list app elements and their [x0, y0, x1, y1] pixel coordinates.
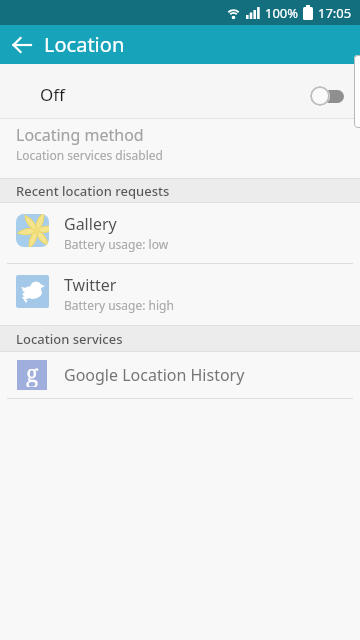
staticText: g: [26, 357, 39, 387]
staticText: Twitter: [64, 274, 117, 296]
staticText: Location: [44, 31, 125, 58]
button[interactable]: g: [0, 352, 360, 398]
staticText: Locating method: [16, 124, 144, 146]
staticText: Battery usage: low: [64, 236, 169, 252]
staticText: Location services disabled: [16, 147, 163, 163]
button[interactable]: Locating method: [0, 119, 360, 178]
staticText: Google Location History: [64, 364, 245, 386]
staticText: 100%: [265, 4, 299, 22]
button[interactable]: Gallery: [0, 203, 360, 263]
button[interactable]: Off: [0, 64, 360, 118]
staticText: Battery usage: high: [64, 297, 174, 313]
staticText: Location services: [16, 330, 123, 348]
button[interactable]: [0, 25, 44, 64]
staticText: Off: [40, 83, 65, 106]
staticText: Gallery: [64, 213, 117, 235]
staticText: Recent location requests: [16, 182, 170, 200]
button[interactable]: Twitter: [0, 264, 360, 325]
staticText: 17:05: [318, 4, 352, 22]
